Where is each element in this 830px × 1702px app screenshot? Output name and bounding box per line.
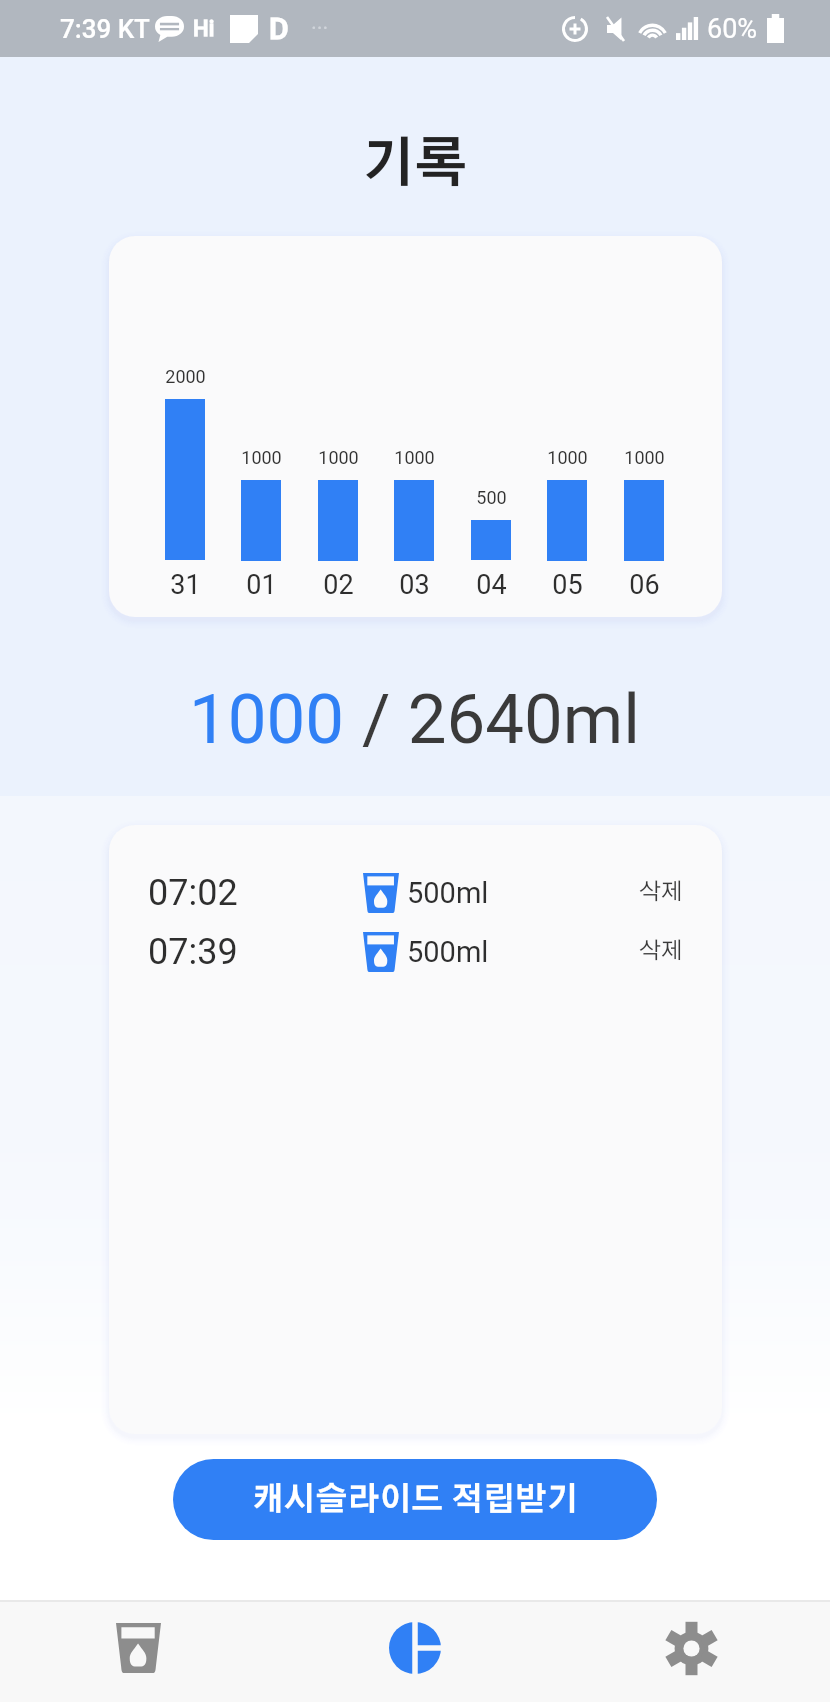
button[interactable]: 캐시슬라이드 적립받기 [173,1459,657,1540]
staticText: 02 [323,569,354,601]
staticText: Hi [193,16,215,42]
staticText: D [269,11,289,46]
staticText: / 2640ml [345,679,641,760]
staticText: 60% [707,13,758,45]
staticText: 500ml [407,876,489,910]
staticText: 07:39 [148,931,238,973]
button[interactable]: Records [276,1602,553,1702]
staticText: 1000 [241,447,282,468]
button[interactable]: 07:02 [109,863,722,922]
staticText: 06 [629,569,660,601]
staticText: 7:39 KT [60,14,150,44]
staticText: 1000 [547,447,588,468]
staticText: 04 [476,569,507,601]
staticText: 1000 [318,447,359,468]
staticText: 삭제 [639,940,684,963]
staticText: 05 [552,569,583,601]
staticText: 기록 [362,139,468,192]
staticText: 1000 [624,447,665,468]
staticText: 삭제 [639,881,684,904]
staticText: 500 [476,487,507,508]
button[interactable]: Settings [553,1602,830,1702]
staticText: 07:02 [148,872,238,914]
button[interactable]: Drink water [0,1602,276,1702]
staticText: ··· [311,16,329,42]
staticText: 03 [399,569,430,601]
staticText: 2000 [165,366,206,387]
staticText: 500ml [407,935,489,969]
staticText: 캐시슬라이드 적립받기 [252,1484,579,1516]
staticText: 31 [170,569,201,601]
staticText: 01 [246,569,277,601]
button[interactable]: 07:39 [109,922,722,981]
staticText: 1000 [189,679,345,760]
staticText: 1000 [394,447,435,468]
